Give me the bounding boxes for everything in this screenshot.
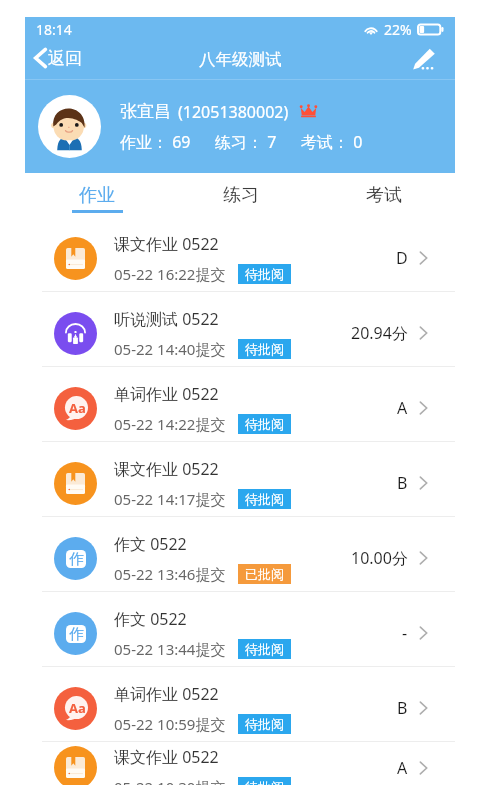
staticText: 听说测试 0522 (114, 308, 219, 330)
staticText: 22% (384, 20, 412, 39)
staticText: 作 (69, 625, 84, 643)
staticText: 05-22 14:17提交 (114, 489, 226, 509)
staticText: 05-22 14:40提交 (114, 339, 226, 359)
staticText: 单词作业 0522 (114, 383, 219, 405)
staticText: D (396, 247, 408, 269)
staticText: A (397, 397, 408, 419)
staticText: 作文 0522 (114, 533, 187, 555)
staticText: 练习 (223, 184, 259, 207)
staticText: 练习： 7 (215, 131, 277, 153)
staticText: 待批阅 (245, 641, 284, 657)
staticText: 张宜昌 (120, 101, 171, 122)
staticText: 20.94分 (351, 322, 408, 344)
staticText: 作文 0522 (114, 608, 187, 630)
staticText: 05-22 14:22提交 (114, 414, 226, 434)
staticText: 考试 (366, 184, 402, 207)
staticText: 05-22 13:44提交 (114, 639, 226, 659)
staticText: 八年级测试 (199, 49, 282, 70)
staticText: 待批阅 (245, 341, 284, 357)
staticText: 10.00分 (351, 547, 408, 569)
staticText: 课文作业 0522 (114, 458, 219, 480)
staticText: 18:14 (36, 20, 72, 39)
staticText: 课文作业 0522 (114, 746, 219, 768)
button[interactable]: 作业 (25, 173, 169, 217)
staticText: 作业： 69 (120, 131, 191, 153)
staticText: 待批阅 (245, 491, 284, 507)
staticText: 05-22 10:59提交 (114, 714, 226, 734)
staticText: (12051380002) (178, 101, 289, 123)
staticText: B (397, 697, 408, 719)
staticText: 待批阅 (245, 266, 284, 282)
staticText: A (397, 757, 408, 779)
staticText: 待批阅 (245, 716, 284, 732)
staticText: 05-22 10:30提交 (114, 777, 226, 785)
staticText: 已批阅 (245, 566, 284, 582)
staticText: 课文作业 0522 (114, 233, 219, 255)
button[interactable]: 作 (25, 517, 455, 591)
button[interactable]: Aa (25, 667, 455, 741)
button[interactable]: Aa (25, 367, 455, 441)
staticText: 考试： 0 (301, 131, 363, 153)
staticText: 待批阅 (245, 779, 284, 785)
staticText: 返回 (48, 48, 82, 69)
button[interactable]: 课文作业 0522 (25, 217, 455, 291)
button[interactable]: 听说测试 0522 (25, 292, 455, 366)
button[interactable]: 练习 (169, 173, 312, 217)
staticText: Aa (69, 699, 86, 717)
button[interactable]: Edit (402, 44, 446, 79)
button[interactable]: 返回 (25, 44, 94, 79)
staticText: 05-22 13:46提交 (114, 564, 226, 584)
button[interactable]: 课文作业 0522 (25, 742, 455, 785)
staticText: 05-22 16:22提交 (114, 264, 226, 284)
staticText: 待批阅 (245, 416, 284, 432)
button[interactable]: 课文作业 0522 (25, 442, 455, 516)
staticText: B (397, 472, 408, 494)
staticText: 作业 (79, 184, 115, 207)
staticText: 单词作业 0522 (114, 683, 219, 705)
button[interactable]: 作 (25, 592, 455, 666)
button[interactable]: 考试 (312, 173, 455, 217)
staticText: 作 (69, 550, 84, 568)
staticText: - (402, 622, 408, 644)
staticText: Aa (69, 399, 86, 417)
